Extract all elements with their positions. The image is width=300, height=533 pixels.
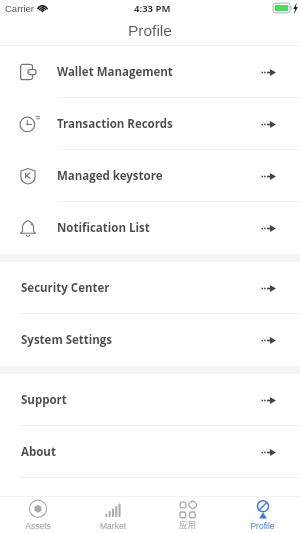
staticText: About — [21, 444, 56, 460]
staticText: Wallet Management — [57, 64, 173, 80]
button[interactable]: About — [0, 426, 300, 478]
staticText: Security Center — [21, 280, 110, 296]
button[interactable]: Market — [75, 497, 150, 533]
staticText: System Settings — [21, 332, 113, 348]
staticText: Carrier — [5, 3, 35, 14]
staticText: Managed keystore — [57, 168, 163, 184]
button[interactable]: Security Center — [0, 262, 300, 314]
staticText: Transaction Records — [57, 116, 173, 132]
staticText: Support — [21, 392, 67, 408]
button[interactable]: Managed keystore — [0, 150, 300, 202]
staticText: 应用 — [179, 520, 196, 531]
button[interactable]: Support — [0, 374, 300, 426]
button[interactable]: Notification List — [0, 202, 300, 254]
staticText: Profile — [128, 22, 172, 39]
button[interactable]: Profile — [225, 497, 300, 533]
button[interactable]: 应用 — [150, 497, 225, 533]
staticText: Market — [100, 521, 126, 530]
button[interactable]: Assets — [0, 497, 75, 533]
button[interactable]: Wallet Management — [0, 46, 300, 98]
staticText: Profile — [250, 521, 275, 530]
button[interactable]: System Settings — [0, 314, 300, 366]
staticText: 4:33 PM — [134, 2, 171, 15]
button[interactable]: Transaction Records — [0, 98, 300, 150]
staticText: Assets — [25, 521, 51, 530]
staticText: Notification List — [57, 220, 150, 236]
